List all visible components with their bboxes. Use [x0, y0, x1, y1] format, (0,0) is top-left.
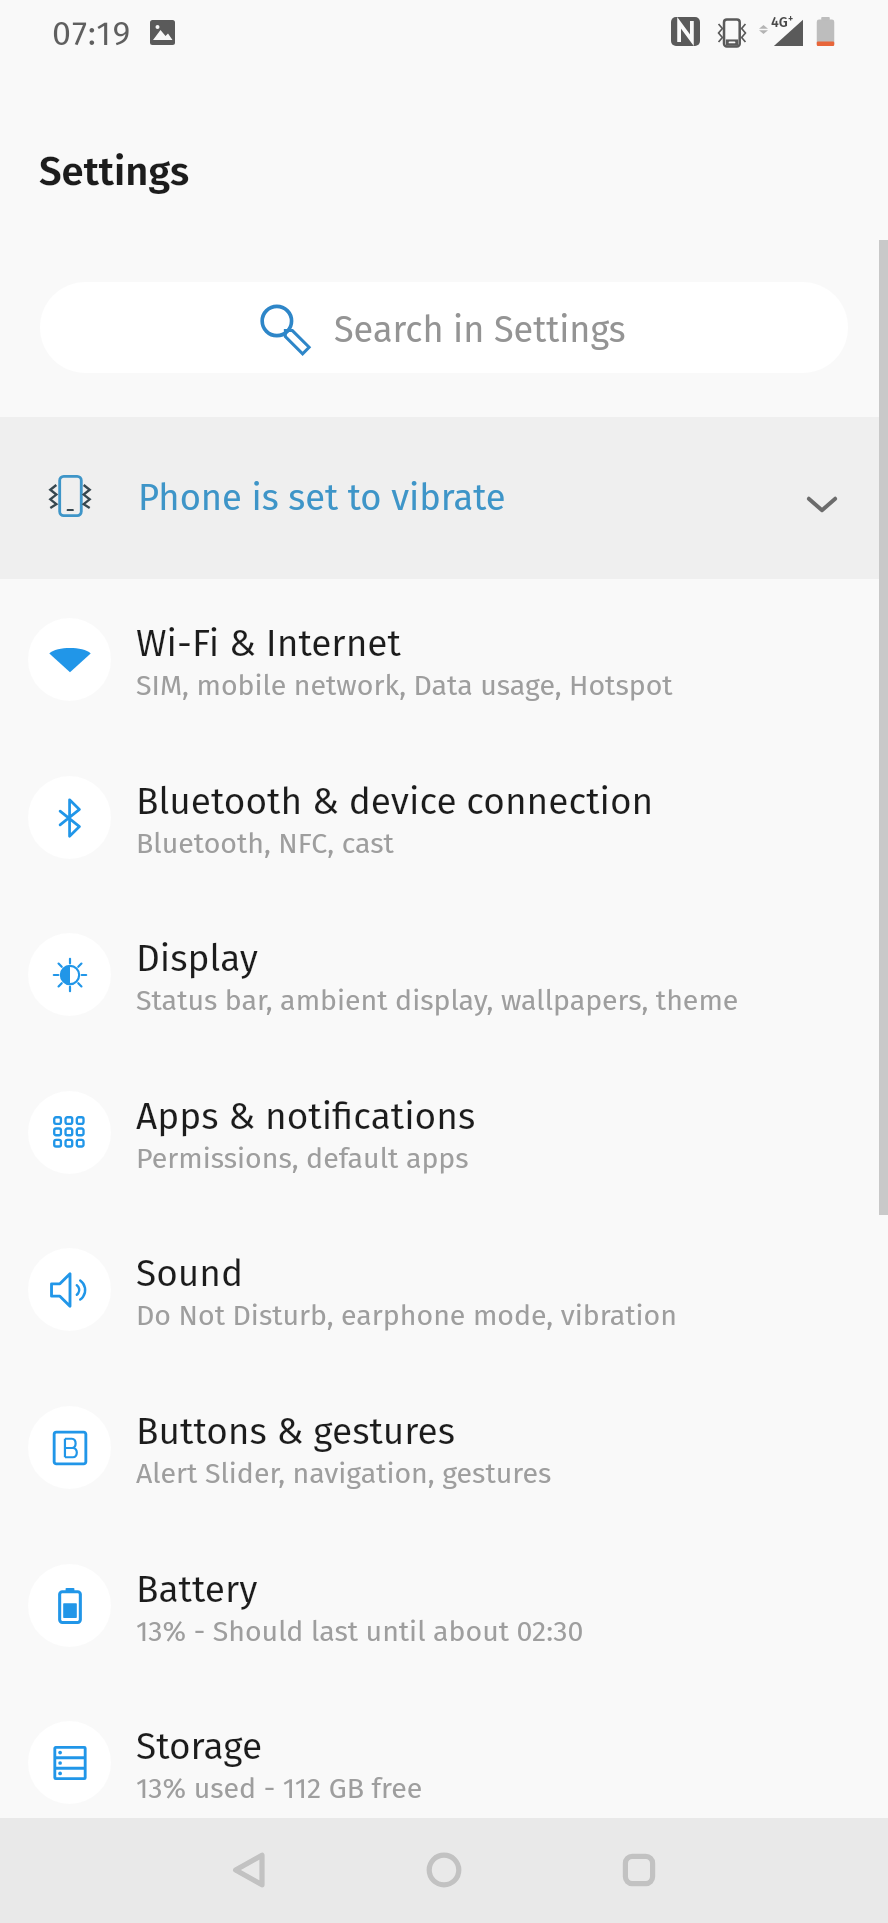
staticText: 13% used - 112 GB free: [136, 1771, 423, 1805]
button[interactable]: Battery: [0, 1527, 888, 1684]
staticText: Status bar, ambient display, wallpapers,…: [136, 983, 739, 1017]
staticText: 4G: [771, 14, 788, 31]
button[interactable]: Bluetooth & device connection: [0, 739, 888, 896]
staticText: Display: [136, 936, 258, 980]
staticText: Battery: [136, 1567, 258, 1611]
button[interactable]: Apps & notifications: [0, 1054, 888, 1211]
staticText: 13% - Should last until about 02:30: [136, 1614, 584, 1648]
staticText: Storage: [136, 1724, 263, 1768]
staticText: Bluetooth & device connection: [136, 779, 654, 823]
staticText: Bluetooth, NFC, cast: [136, 826, 394, 860]
staticText: Wi-Fi & Internet: [136, 621, 401, 665]
button[interactable]: Wi-Fi & Internet: [0, 581, 888, 738]
staticText: Settings: [39, 148, 190, 196]
staticText: Search in Settings: [334, 308, 626, 351]
button[interactable]: Phone is set to vibrate: [0, 417, 888, 579]
button[interactable]: Display: [0, 896, 888, 1053]
staticText: Phone is set to vibrate: [138, 476, 506, 520]
staticText: Do Not Disturb, earphone mode, vibration: [136, 1298, 677, 1332]
other: Search: [257, 306, 311, 360]
staticText: Permissions, default apps: [136, 1141, 469, 1175]
button[interactable]: Buttons & gestures: [0, 1369, 888, 1526]
button[interactable]: Search: [40, 282, 848, 373]
staticText: +: [788, 13, 794, 25]
staticText: Buttons & gestures: [136, 1409, 455, 1453]
staticText: Sound: [136, 1251, 244, 1295]
staticText: SIM, mobile network, Data usage, Hotspot: [136, 668, 673, 702]
button[interactable]: Storage: [0, 1684, 888, 1841]
staticText: Apps & notifications: [136, 1094, 476, 1138]
button[interactable]: Home: [392, 1818, 496, 1922]
staticText: 07:19: [52, 13, 132, 54]
button[interactable]: Back: [198, 1818, 302, 1922]
button[interactable]: Recent apps: [587, 1818, 691, 1922]
staticText: Alert Slider, navigation, gestures: [136, 1456, 552, 1490]
other: Expand: [800, 482, 844, 526]
button[interactable]: Sound: [0, 1211, 888, 1368]
